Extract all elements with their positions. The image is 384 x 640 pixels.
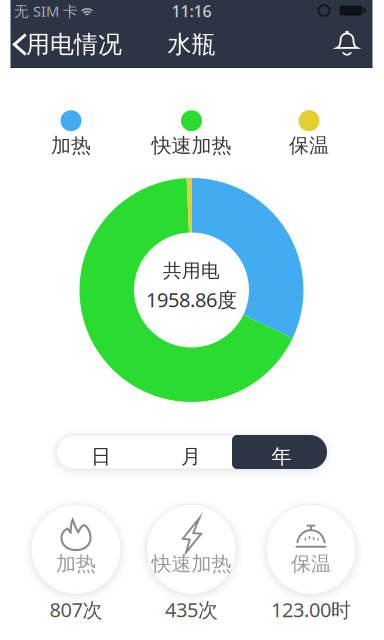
staticText: 年 (271, 444, 291, 469)
staticText: 加热 (51, 133, 91, 158)
staticText: 共用电 (163, 259, 220, 282)
button[interactable]: 年 (236, 435, 327, 469)
staticText: 快速加热 (151, 551, 231, 576)
staticText: 无 SIM 卡 (14, 1, 78, 21)
staticText: 807次 (49, 596, 102, 623)
staticText: 435次 (165, 596, 218, 623)
staticText: 保温 (291, 551, 331, 576)
staticText: 快速加热 (151, 133, 231, 158)
staticText: 11:16 (171, 0, 211, 22)
button[interactable]: 加热 (31, 504, 121, 623)
button[interactable]: 保温 (266, 504, 356, 623)
staticText: 用电情况 (26, 30, 122, 59)
staticText: 月 (181, 444, 201, 469)
staticText: 水瓶 (167, 30, 215, 59)
staticText: 1958.86度 (146, 286, 237, 313)
button[interactable]: 通知 (331, 28, 363, 60)
button[interactable]: 快速加热 (146, 504, 236, 623)
staticText: 保温 (289, 133, 329, 158)
button[interactable]: 返回 用电情况 (0, 22, 120, 66)
staticText: 日 (91, 444, 111, 469)
staticText: 加热 (56, 551, 96, 576)
button[interactable]: 月 (146, 435, 236, 469)
staticText: 123.00时 (271, 596, 351, 623)
button[interactable]: 日 (56, 435, 146, 469)
